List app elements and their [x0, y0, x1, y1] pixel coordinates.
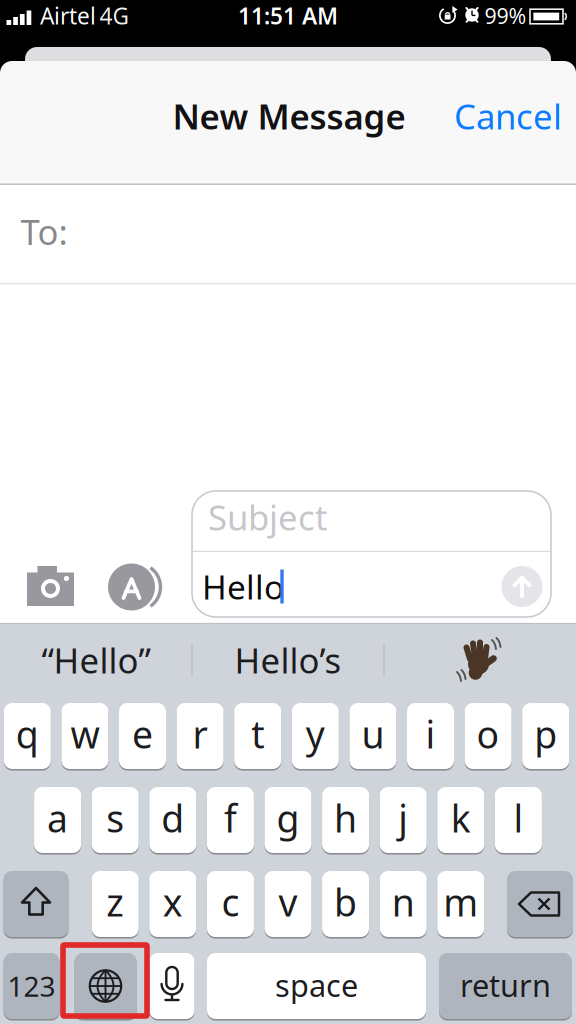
button[interactable]: b [322, 871, 369, 937]
button[interactable]: Cancel [443, 90, 573, 142]
button[interactable]: o [465, 703, 512, 769]
staticText: w [70, 709, 99, 759]
button[interactable]: iMessage apps [100, 561, 166, 613]
staticText: 4G [99, 1, 129, 31]
button[interactable]: s [92, 787, 139, 853]
staticText: e [132, 709, 153, 759]
button[interactable]: j [380, 787, 427, 853]
staticText: d [161, 793, 184, 843]
button[interactable]: w [61, 703, 108, 769]
button[interactable]: Shift [3, 871, 68, 937]
staticText: a [47, 793, 68, 843]
button[interactable]: h [322, 787, 369, 853]
button[interactable]: Next keyboard [74, 953, 136, 1019]
staticText: New Message [172, 93, 405, 139]
button[interactable]: x [149, 871, 196, 937]
button[interactable]: “Hello” [6, 628, 186, 692]
staticText: Airtel [40, 1, 96, 31]
staticText: space [275, 965, 358, 1005]
staticText: x [163, 877, 183, 927]
staticText: 99% [484, 2, 526, 30]
staticText: g [276, 793, 299, 843]
staticText: u [361, 709, 384, 759]
button[interactable]: i [407, 703, 454, 769]
staticText: q [16, 709, 39, 759]
staticText: p [534, 709, 557, 759]
button[interactable]: q [4, 703, 51, 769]
button[interactable]: r [177, 703, 224, 769]
staticText: n [392, 877, 415, 927]
button[interactable]: m [437, 871, 484, 937]
button[interactable]: u [349, 703, 396, 769]
button[interactable]: f [207, 787, 254, 853]
staticText: c [221, 877, 239, 927]
button[interactable]: Waving hand emoji [448, 628, 512, 692]
staticText: Subject [208, 494, 328, 540]
staticText: m [443, 877, 478, 927]
staticText: z [106, 877, 124, 927]
staticText: i [425, 709, 435, 759]
staticText: b [334, 877, 357, 927]
staticText: t [251, 709, 264, 759]
staticText: “Hello” [41, 637, 150, 683]
button[interactable]: t [234, 703, 281, 769]
button[interactable]: p [522, 703, 569, 769]
staticText: r [193, 709, 208, 759]
staticText: 123 [8, 967, 56, 1005]
staticText: return [460, 965, 551, 1005]
staticText: Hello [202, 564, 284, 609]
button[interactable]: c [207, 871, 254, 937]
button[interactable]: a [34, 787, 81, 853]
button[interactable]: v [264, 871, 311, 937]
button[interactable]: n [380, 871, 427, 937]
button[interactable]: Hello’s [198, 628, 378, 692]
staticText: j [398, 793, 408, 843]
button[interactable]: e [119, 703, 166, 769]
button[interactable]: Camera [23, 560, 78, 612]
button[interactable]: g [264, 787, 311, 853]
staticText: Hello’s [234, 637, 341, 683]
button[interactable]: z [92, 871, 139, 937]
staticText: o [477, 709, 500, 759]
button[interactable]: d [149, 787, 196, 853]
button[interactable]: space [207, 953, 426, 1019]
button[interactable]: Delete [507, 871, 573, 937]
button[interactable]: k [437, 787, 484, 853]
button[interactable]: Dictation [149, 953, 194, 1019]
staticText: To: [20, 208, 67, 254]
staticText: s [106, 793, 124, 843]
staticText: Cancel [454, 93, 562, 139]
button[interactable]: y [292, 703, 339, 769]
button[interactable]: Send [501, 566, 542, 607]
staticText: y [306, 709, 325, 759]
staticText: k [451, 793, 471, 843]
staticText: 11:51 AM [238, 1, 338, 31]
button[interactable]: 123 [4, 953, 60, 1019]
staticText: v [278, 877, 297, 927]
button[interactable]: l [495, 787, 542, 853]
button[interactable]: return [439, 953, 572, 1019]
staticText: f [224, 793, 237, 843]
staticText: l [513, 793, 523, 843]
staticText: h [334, 793, 357, 843]
